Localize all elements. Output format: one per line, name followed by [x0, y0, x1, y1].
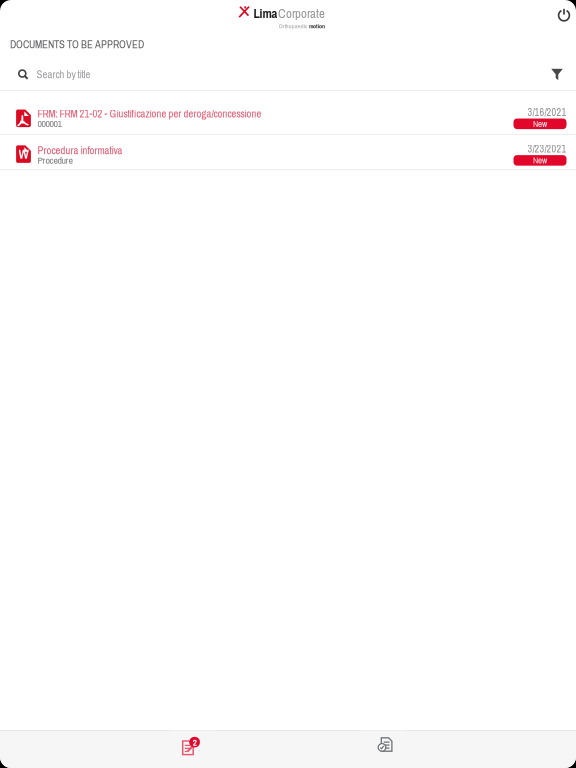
- staticText: DOCUMENTS TO BE APPROVED: [10, 37, 144, 52]
- button[interactable]: W: [0, 135, 576, 169]
- staticText: Corporate: [278, 5, 325, 22]
- staticText: 000001: [37, 117, 61, 130]
- staticText: 3/23/2021: [527, 142, 566, 156]
- button[interactable]: FRM: FRM 21-02 - Giustificazione per der…: [0, 91, 576, 134]
- staticText: New: [533, 118, 547, 130]
- button[interactable]: Log out: [552, 2, 576, 28]
- staticText: Search by title: [36, 67, 90, 82]
- staticText: Orthopaedic: [279, 22, 308, 30]
- staticText: 2: [193, 735, 197, 749]
- staticText: W: [18, 145, 28, 163]
- button[interactable]: Approved documents: [361, 730, 405, 768]
- staticText: Procedure: [37, 153, 72, 167]
- staticText: motion: [309, 22, 325, 30]
- staticText: 3/16/2021: [527, 105, 566, 119]
- button[interactable]: Documents to approve: [170, 730, 214, 768]
- button[interactable]: Filter: [545, 62, 569, 86]
- staticText: Lima: [253, 5, 277, 22]
- staticText: New: [533, 154, 547, 166]
- staticText: Procedura informativa: [37, 143, 122, 157]
- staticText: FRM: FRM 21-02 - Giustificazione per der…: [37, 107, 261, 121]
